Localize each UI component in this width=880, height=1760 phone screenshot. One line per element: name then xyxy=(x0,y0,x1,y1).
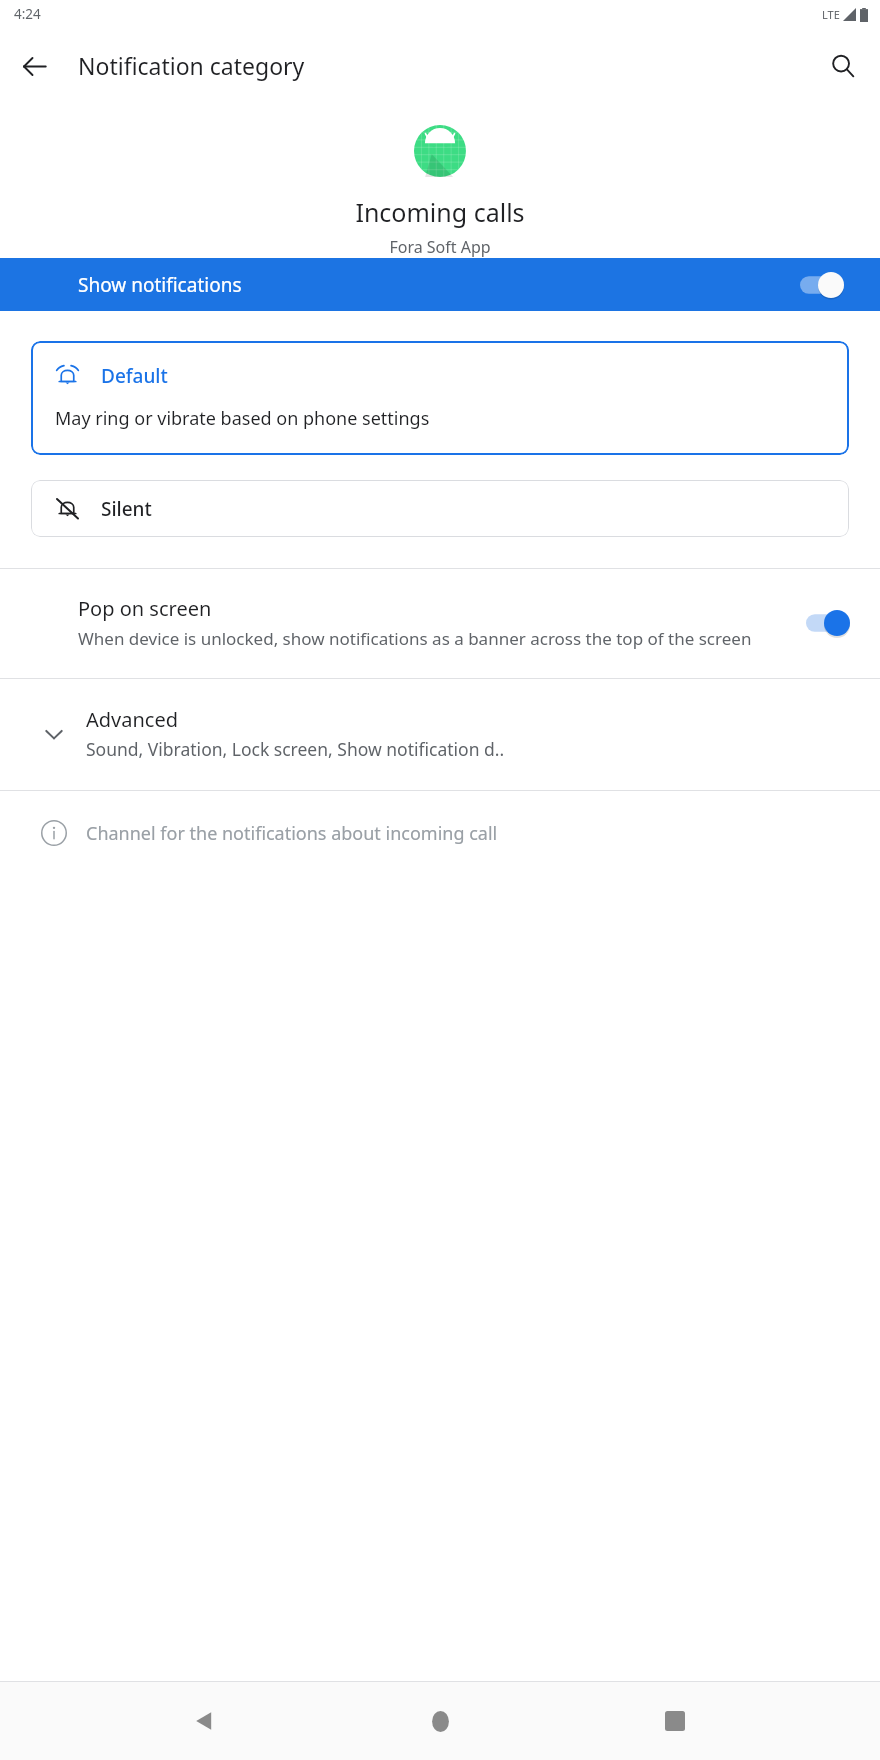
staticText: Sound, Vibration, Lock screen, Show noti… xyxy=(86,737,505,761)
button[interactable]: Back xyxy=(175,1691,235,1751)
staticText: Channel for the notifications about inco… xyxy=(86,821,498,846)
staticText: Pop on screen xyxy=(78,595,212,622)
button[interactable]: Advanced xyxy=(0,679,880,790)
button[interactable]: Default xyxy=(31,341,849,455)
button[interactable]: Show notifications xyxy=(0,258,880,311)
staticText: Silent xyxy=(101,496,152,522)
staticText: LTE xyxy=(822,7,840,22)
staticText: When device is unlocked, show notificati… xyxy=(78,627,752,650)
staticText: Notification category xyxy=(78,50,305,81)
staticText: Show notifications xyxy=(78,272,242,298)
button[interactable]: Search xyxy=(819,42,867,90)
staticText: May ring or vibrate based on phone setti… xyxy=(55,406,430,431)
staticText: Advanced xyxy=(86,706,178,733)
staticText: Default xyxy=(101,363,168,389)
button[interactable]: Recent apps xyxy=(645,1691,705,1751)
button[interactable]: Silent xyxy=(31,480,849,537)
staticText: 4:24 xyxy=(14,5,41,23)
staticText: Incoming calls xyxy=(355,195,525,229)
button[interactable]: Home xyxy=(410,1691,470,1751)
staticText: Fora Soft App xyxy=(389,236,491,258)
button[interactable]: Pop on screen xyxy=(0,569,880,678)
button[interactable]: Back xyxy=(10,42,58,90)
